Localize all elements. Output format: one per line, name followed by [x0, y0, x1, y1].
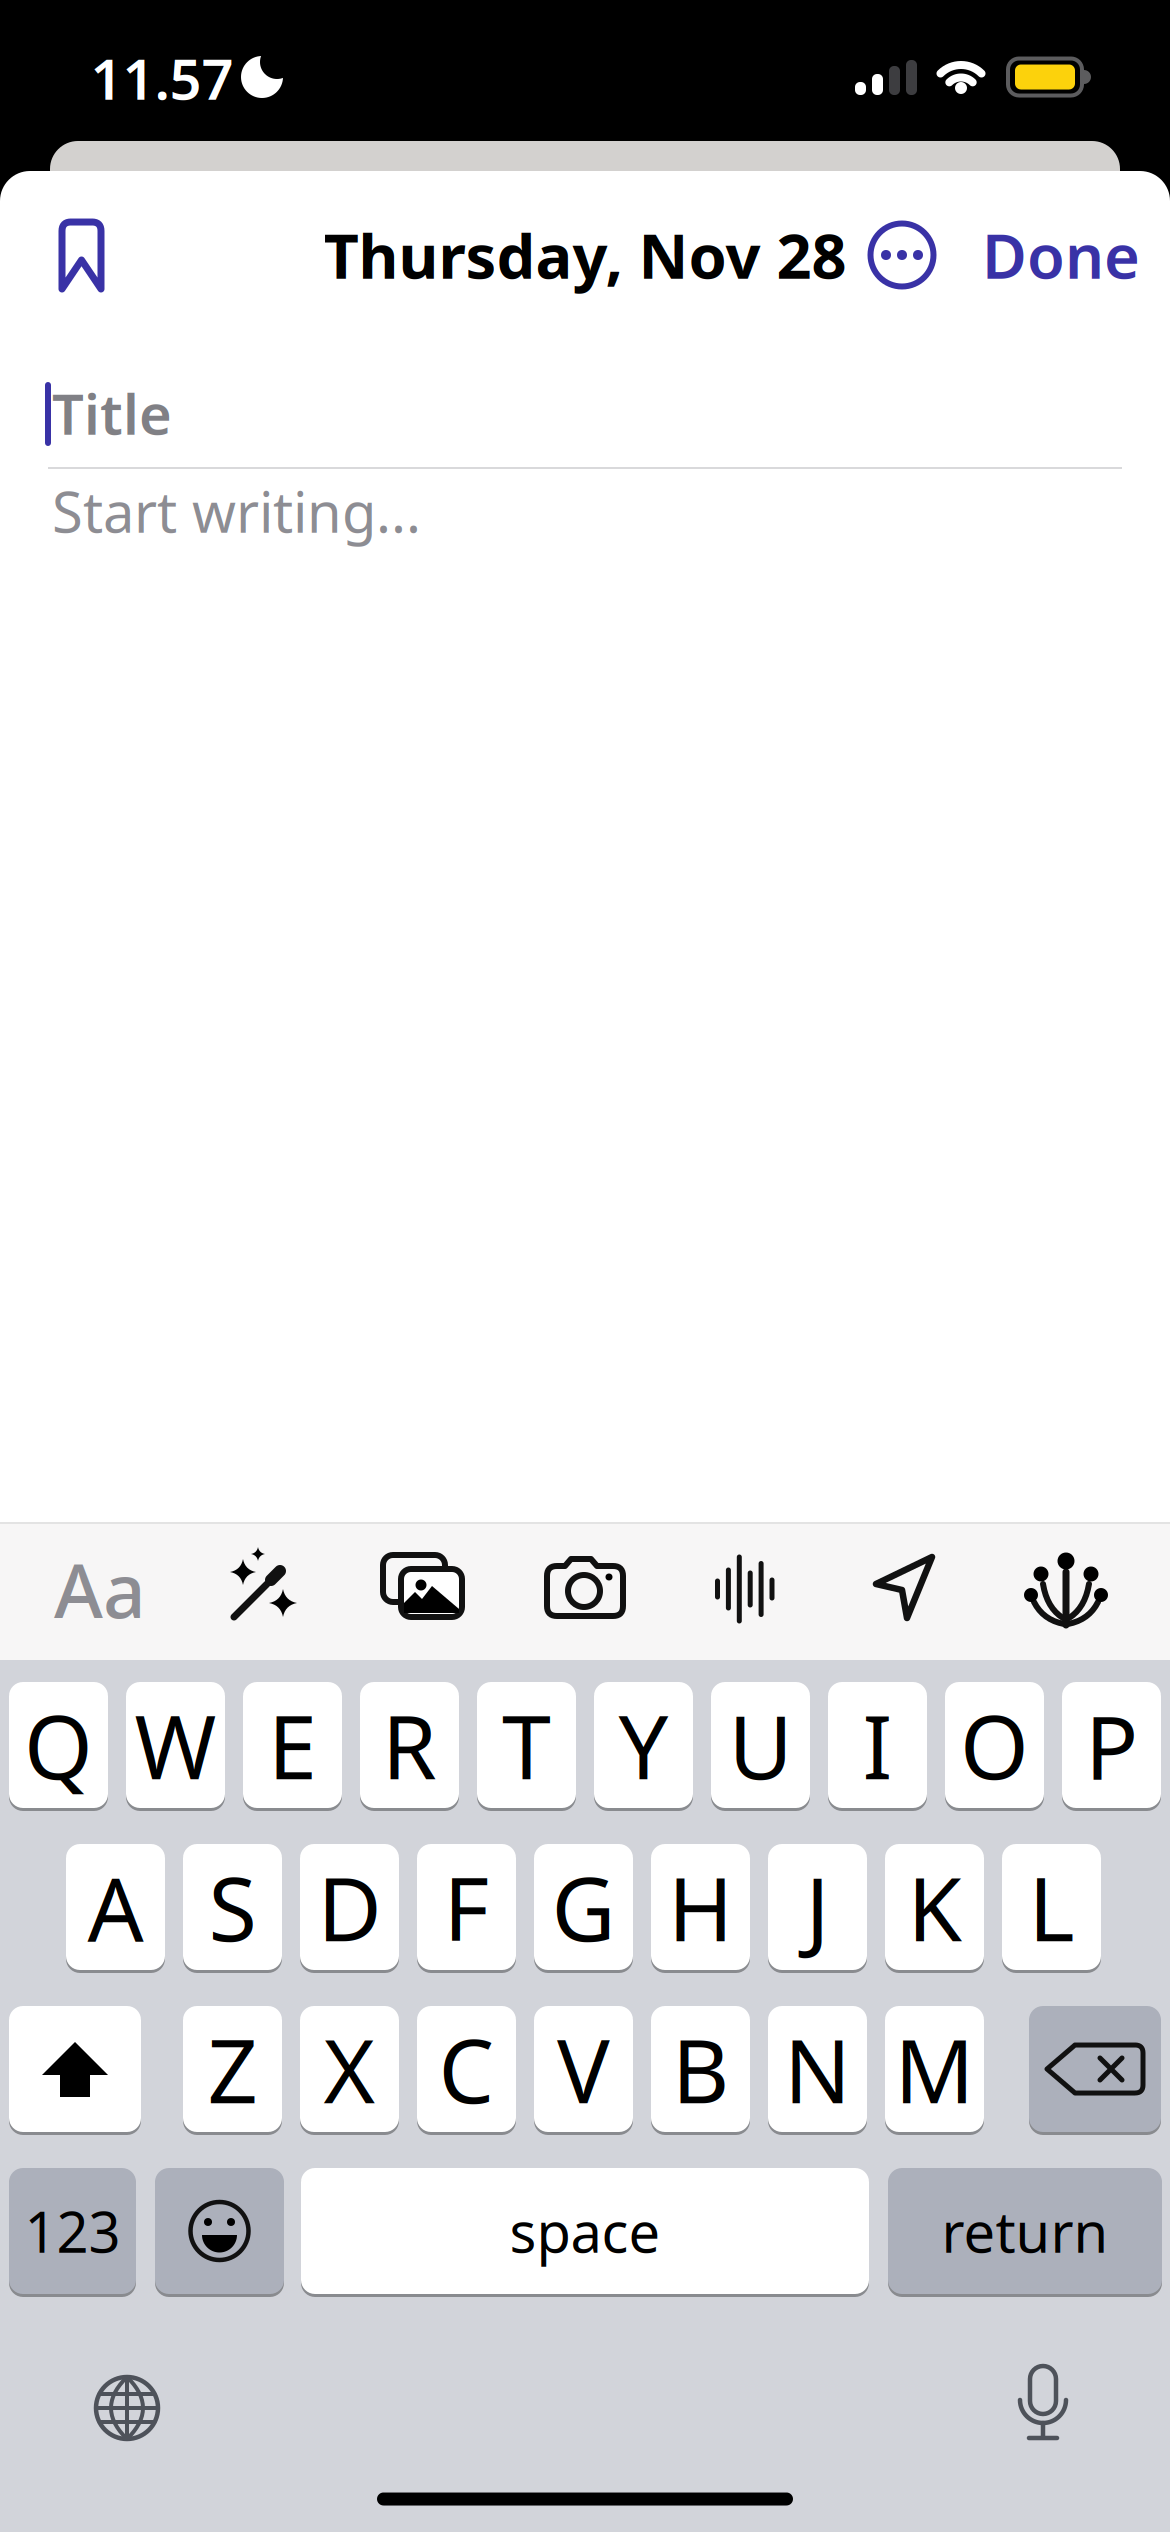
button[interactable]: More options: [866, 219, 938, 291]
button[interactable]: Dictate: [995, 2360, 1091, 2456]
staticText: X: [323, 2011, 375, 2127]
staticText: C: [438, 2011, 494, 2127]
staticText: M: [894, 2011, 974, 2127]
staticText: Z: [207, 2011, 257, 2127]
button[interactable]: Photo library: [374, 1541, 470, 1637]
button[interactable]: K: [885, 1844, 984, 1970]
staticText: Aa: [54, 1539, 146, 1639]
staticText: J: [805, 1849, 829, 1965]
button[interactable]: N: [768, 2006, 867, 2132]
button[interactable]: Done: [982, 214, 1140, 296]
staticText: O: [960, 1687, 1029, 1803]
button[interactable]: Delete: [1029, 2006, 1161, 2132]
staticText: A: [87, 1849, 143, 1965]
button[interactable]: R: [360, 1682, 459, 1808]
button[interactable]: Daily prompt: [1018, 1541, 1114, 1637]
staticText: Thursday, Nov 28: [323, 214, 846, 296]
staticText: Q: [24, 1687, 93, 1803]
button[interactable]: J: [768, 1844, 867, 1970]
staticText: 123: [24, 2194, 120, 2268]
button[interactable]: Q: [9, 1682, 108, 1808]
button[interactable]: return: [888, 2168, 1162, 2294]
staticText: K: [907, 1849, 961, 1965]
button[interactable]: U: [711, 1682, 810, 1808]
staticText: V: [557, 2011, 610, 2127]
staticText: D: [317, 1849, 381, 1965]
staticText: N: [784, 2011, 851, 2127]
staticText: Done: [982, 214, 1140, 296]
staticText: E: [268, 1687, 317, 1803]
staticText: B: [672, 2011, 729, 2127]
button[interactable]: Z: [183, 2006, 282, 2132]
button[interactable]: T: [477, 1682, 576, 1808]
staticText: T: [502, 1687, 551, 1803]
button[interactable]: F: [417, 1844, 516, 1970]
staticText: H: [668, 1849, 733, 1965]
staticText: I: [862, 1687, 892, 1803]
button[interactable]: A: [66, 1844, 165, 1970]
staticText: Title: [52, 376, 172, 450]
staticText: space: [509, 2194, 660, 2268]
button[interactable]: Location: [857, 1541, 953, 1637]
button[interactable]: Bookmark: [58, 218, 104, 292]
staticText: W: [134, 1687, 216, 1803]
button[interactable]: L: [1002, 1844, 1101, 1970]
staticText: 11.57: [90, 41, 233, 115]
button[interactable]: M: [885, 2006, 984, 2132]
button[interactable]: Camera: [535, 1541, 631, 1637]
staticText: P: [1085, 1687, 1138, 1803]
button[interactable]: Text style: [52, 1541, 148, 1637]
staticText: U: [728, 1687, 792, 1803]
button[interactable]: 123: [9, 2168, 136, 2294]
button[interactable]: I: [828, 1682, 927, 1808]
staticText: Start writing...: [52, 474, 421, 548]
button[interactable]: G: [534, 1844, 633, 1970]
button[interactable]: S: [183, 1844, 282, 1970]
button[interactable]: Audio recording: [696, 1541, 792, 1637]
button[interactable]: E: [243, 1682, 342, 1808]
staticText: S: [208, 1849, 256, 1965]
button[interactable]: O: [945, 1682, 1044, 1808]
button[interactable]: X: [300, 2006, 399, 2132]
button[interactable]: Emoji: [155, 2168, 284, 2294]
button[interactable]: P: [1062, 1682, 1161, 1808]
staticText: Y: [618, 1687, 668, 1803]
staticText: return: [941, 2194, 1108, 2268]
button[interactable]: Magic wand: [213, 1541, 309, 1637]
staticText: G: [551, 1849, 615, 1965]
staticText: F: [443, 1849, 489, 1965]
button[interactable]: space: [301, 2168, 869, 2294]
button[interactable]: Shift: [9, 2006, 141, 2132]
button[interactable]: H: [651, 1844, 750, 1970]
button[interactable]: Y: [594, 1682, 693, 1808]
button[interactable]: V: [534, 2006, 633, 2132]
button[interactable]: Next keyboard: [79, 2360, 175, 2456]
button[interactable]: C: [417, 2006, 516, 2132]
button[interactable]: D: [300, 1844, 399, 1970]
staticText: R: [382, 1687, 437, 1803]
button[interactable]: B: [651, 2006, 750, 2132]
button[interactable]: W: [126, 1682, 225, 1808]
staticText: L: [1028, 1849, 1074, 1965]
